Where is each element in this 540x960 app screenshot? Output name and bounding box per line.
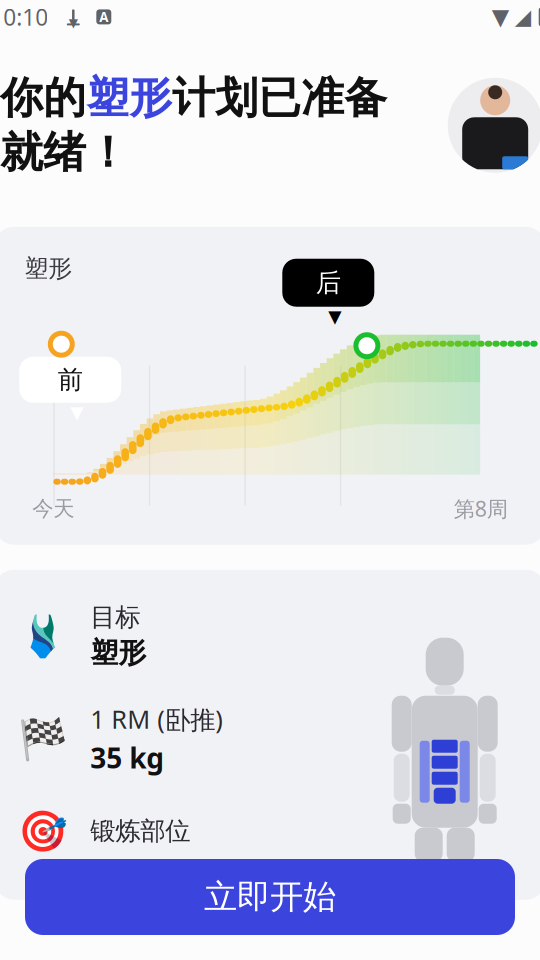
button[interactable]: 立即开始	[25, 859, 515, 935]
staticText: 就绪！	[0, 126, 129, 179]
staticText: 35 kg	[90, 739, 164, 776]
staticText: 🏁	[18, 716, 68, 762]
staticText: 塑形	[86, 72, 172, 124]
staticText: 后	[316, 267, 341, 298]
staticText: 锻炼部位	[90, 815, 190, 847]
staticText: ▼	[328, 307, 341, 326]
staticText: 立即开始	[204, 876, 336, 917]
staticText: 今天	[32, 495, 74, 522]
staticText: 🎯	[18, 808, 68, 854]
button[interactable]: 教练头像	[448, 78, 540, 173]
staticText: 1 RM (卧推)	[90, 702, 223, 736]
staticText: 第8周	[454, 494, 508, 523]
staticText: ▼	[70, 403, 83, 422]
staticText: 🩱	[18, 613, 68, 659]
staticText: ▼	[492, 4, 509, 30]
staticText: 塑形	[90, 636, 146, 670]
staticText: 计划已准备	[172, 72, 387, 124]
staticText: 10:10	[0, 2, 48, 32]
staticText: ▼	[69, 16, 78, 30]
staticText: 你的	[0, 72, 86, 124]
staticText: 塑形	[24, 254, 72, 283]
staticText: 目标	[90, 602, 140, 633]
staticText: 前	[58, 364, 83, 395]
staticText: ◢	[515, 5, 531, 29]
staticText: A	[99, 8, 108, 26]
